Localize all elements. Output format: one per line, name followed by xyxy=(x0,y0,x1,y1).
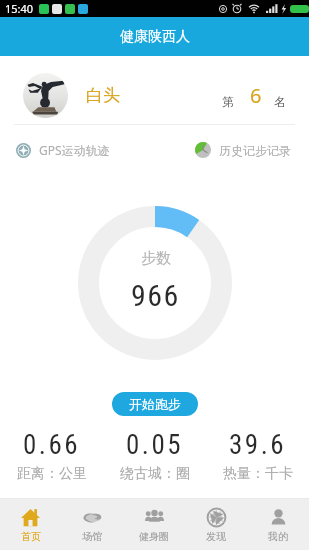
staticText: 39.6 xyxy=(229,429,287,461)
staticText: GPS运动轨迹 xyxy=(39,142,110,158)
staticText: 0.66 xyxy=(23,429,81,461)
button[interactable]: 历史记步记录 xyxy=(154,125,309,175)
staticText: 距离：公里 xyxy=(17,465,87,483)
staticText: 白头 xyxy=(86,85,120,106)
staticText: 名 xyxy=(274,94,286,109)
button[interactable]: 我的 xyxy=(247,499,309,550)
staticText: 场馆 xyxy=(82,530,102,543)
button[interactable]: 首页 xyxy=(0,499,61,550)
staticText: 首页 xyxy=(21,530,41,543)
staticText: 开始跑步 xyxy=(129,396,181,412)
staticText: 我的 xyxy=(268,530,288,543)
staticText: 热量：千卡 xyxy=(223,465,293,483)
staticText: 第 xyxy=(222,94,234,109)
staticText: 历史记步记录 xyxy=(219,143,291,158)
staticText: 15:40 xyxy=(5,1,34,16)
button[interactable]: 场馆 xyxy=(61,499,123,550)
staticText: 健身圈 xyxy=(139,530,169,543)
button[interactable]: GPS运动轨迹 xyxy=(0,125,154,175)
staticText: 绕古城：圈 xyxy=(120,465,190,483)
staticText: 步数 xyxy=(141,249,171,268)
staticText: 966 xyxy=(131,278,180,313)
button[interactable]: 健身圈 xyxy=(123,499,185,550)
staticText: 发现 xyxy=(206,530,226,543)
staticText: 6 xyxy=(250,82,262,109)
button[interactable]: 发现 xyxy=(185,499,247,550)
button[interactable]: 开始跑步 xyxy=(112,392,198,416)
staticText: 0.05 xyxy=(126,429,184,461)
staticText: 健康陕西人 xyxy=(120,28,190,46)
